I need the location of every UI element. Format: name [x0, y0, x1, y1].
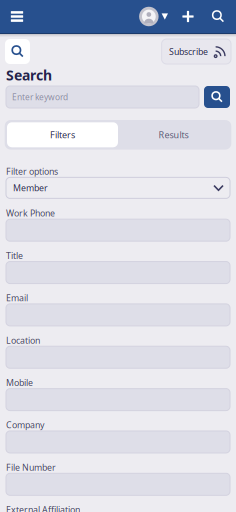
staticText: Location [6, 334, 40, 346]
staticText: Work Phone [6, 207, 55, 219]
staticText: File Number [6, 461, 56, 473]
button[interactable]: Account [134, 0, 173, 33]
staticText: Title [6, 250, 23, 262]
staticText: Email [6, 292, 28, 304]
staticText: Mobile [6, 377, 33, 389]
button[interactable]: Filters [7, 122, 118, 147]
staticText: Results [158, 129, 188, 141]
button[interactable]: Search [5, 39, 30, 64]
button[interactable]: Search [204, 86, 230, 108]
button[interactable]: Member [6, 177, 230, 198]
staticText: External Affiliation [6, 504, 80, 512]
staticText: Subscribe [169, 45, 208, 57]
staticText: Search [6, 65, 52, 85]
button[interactable]: Add [173, 0, 203, 33]
button[interactable]: Results [118, 122, 229, 147]
staticText: Filter options [6, 165, 58, 177]
button[interactable]: Subscribe [162, 39, 231, 64]
staticText: Enter keyword [12, 91, 68, 103]
staticText: Member [13, 182, 48, 194]
button[interactable]: Search [203, 0, 233, 33]
button[interactable]: Menu [0, 0, 34, 33]
staticText: Filters [50, 129, 75, 141]
staticText: Company [6, 419, 44, 431]
